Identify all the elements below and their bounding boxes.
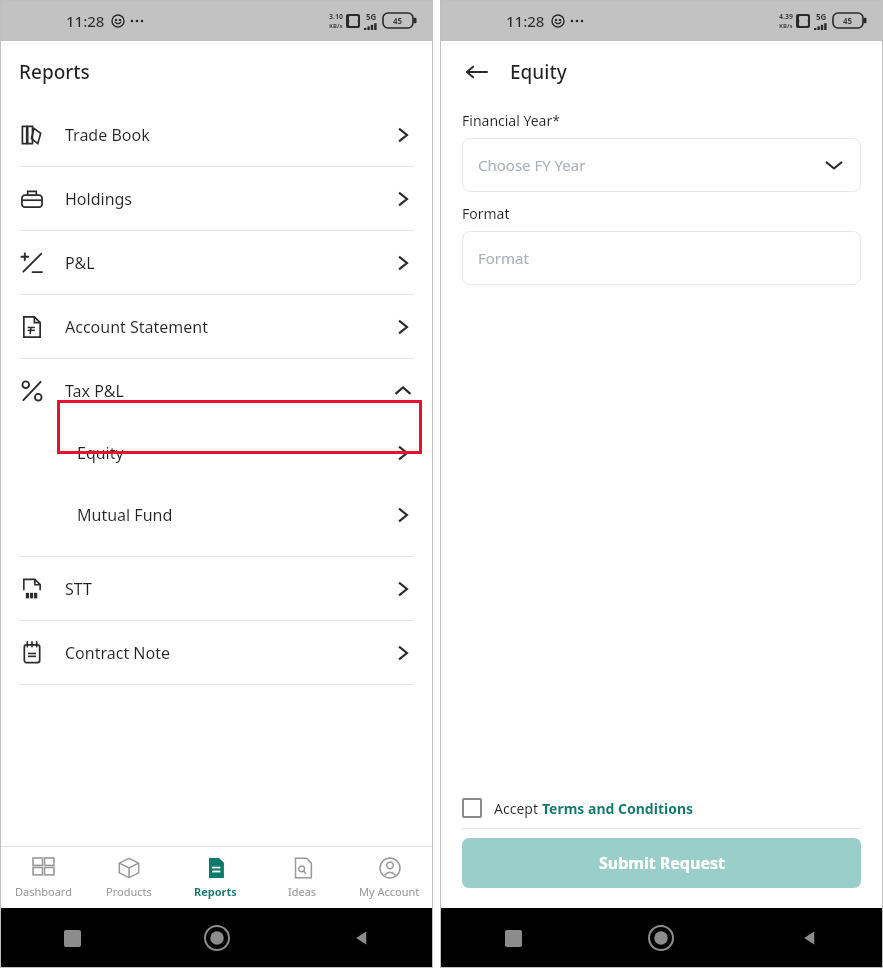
staticText: Terms and Conditions <box>542 799 694 818</box>
button[interactable]: Back <box>462 57 492 87</box>
staticText: 11:28 <box>66 11 105 31</box>
staticText: Tax P&L <box>65 380 124 402</box>
button[interactable]: Choose FY Year <box>462 138 861 192</box>
staticText: Mutual Fund <box>77 504 173 526</box>
staticText: Reports <box>194 884 237 899</box>
staticText: 45 <box>843 15 853 26</box>
staticText: Dashboard <box>15 884 72 899</box>
button[interactable]: Account Statement <box>0 295 433 358</box>
button[interactable]: Home <box>587 908 735 968</box>
staticText: P&L <box>65 252 95 274</box>
button[interactable]: Holdings <box>0 167 433 230</box>
button[interactable]: Tax P&L <box>0 359 433 422</box>
staticText: 4.39 <box>779 12 793 22</box>
button[interactable]: Ideas <box>259 847 346 908</box>
staticText: Submit Request <box>599 852 725 874</box>
staticText: Format <box>478 248 529 268</box>
staticText: KB/s <box>779 22 793 30</box>
staticText: Choose FY Year <box>478 155 586 175</box>
button[interactable]: Mutual Fund <box>0 484 433 546</box>
button[interactable]: Products <box>86 847 172 908</box>
staticText: Account Statement <box>65 316 208 338</box>
staticText: Format <box>462 204 510 223</box>
button[interactable]: Back <box>289 908 433 968</box>
staticText: Products <box>106 884 152 899</box>
staticText: Trade Book <box>65 124 150 146</box>
staticText: 5G <box>816 11 827 22</box>
button[interactable]: Reports <box>172 847 259 908</box>
button[interactable]: Home <box>145 908 289 968</box>
button[interactable]: Submit Request <box>462 838 861 888</box>
button[interactable]: Equity <box>0 422 433 484</box>
staticText: Equity <box>510 59 567 85</box>
staticText: Holdings <box>65 188 133 210</box>
button[interactable]: Contract Note <box>0 621 433 684</box>
button[interactable]: Back <box>735 908 883 968</box>
staticText: Ideas <box>288 884 317 899</box>
staticText: STT <box>65 578 92 600</box>
button[interactable]: P&L <box>0 231 433 294</box>
button[interactable]: Accept <box>440 790 883 828</box>
button[interactable]: My Account <box>346 847 433 908</box>
staticText: Contract Note <box>65 642 170 664</box>
staticText: Reports <box>19 59 90 85</box>
staticText: Equity <box>77 442 124 464</box>
staticText: 5G <box>366 11 377 22</box>
staticText: KB/s <box>329 22 343 30</box>
staticText: 45 <box>393 15 403 26</box>
button[interactable]: Recent apps <box>0 908 145 968</box>
button[interactable]: Format <box>462 231 861 285</box>
staticText: Financial Year* <box>462 111 560 130</box>
button[interactable]: STT <box>0 557 433 620</box>
button[interactable]: Recent apps <box>440 908 587 968</box>
button[interactable]: Dashboard <box>0 847 86 908</box>
button[interactable]: Trade Book <box>0 103 433 166</box>
staticText: My Account <box>359 884 420 899</box>
staticText: Accept <box>494 799 542 818</box>
staticText: 11:28 <box>506 11 545 31</box>
staticText: 3.10 <box>329 12 343 22</box>
